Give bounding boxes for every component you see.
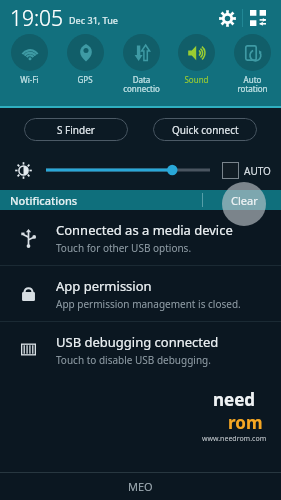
staticText: GPS [77,74,93,85]
button[interactable]: Auto rotation [225,34,279,95]
staticText: S Finder [57,123,95,137]
button[interactable]: Settings [212,3,242,33]
button[interactable]: Connected as a media device [0,210,281,265]
button[interactable]: Clear [207,190,281,210]
button[interactable]: Quick connect [153,118,257,141]
staticText: 19:05 [10,4,64,33]
staticText: USB debugging connected [56,333,219,351]
staticText: Wi-Fi [20,74,39,85]
staticText: www.needrom.com [202,434,267,444]
staticText: Touch to disable USB debugging. [56,353,211,367]
staticText: Auto rotation [237,74,268,95]
staticText: AUTO [244,164,271,178]
staticText: Dec 31, Tue [69,14,119,26]
button[interactable] [46,160,210,180]
button[interactable]: Sound [169,34,223,85]
staticText: Sound [184,74,209,85]
button[interactable]: USB debugging connected [0,322,281,377]
button[interactable]: S Finder [24,118,128,141]
staticText: MEO [128,479,153,494]
button[interactable]: Edit quick settings [243,3,273,33]
staticText: rom [228,411,263,434]
staticText: Connected as a media device [56,221,233,239]
button[interactable]: AUTO [222,162,271,179]
staticText: Clear [231,193,258,208]
staticText: need [213,388,256,411]
staticText: Touch for other USB options. [56,241,192,255]
staticText: Notifications [10,193,78,208]
staticText: App permission management is closed. [56,297,241,311]
button[interactable]: Wi-Fi [2,34,56,85]
button[interactable]: Data connectio [114,34,168,95]
staticText: App permission [56,277,152,295]
staticText: Quick connect [172,123,239,137]
button[interactable]: Brightness [10,157,36,183]
button[interactable]: GPS [58,34,112,85]
staticText: Data connectio [123,74,160,95]
button[interactable]: App permission [0,266,281,321]
